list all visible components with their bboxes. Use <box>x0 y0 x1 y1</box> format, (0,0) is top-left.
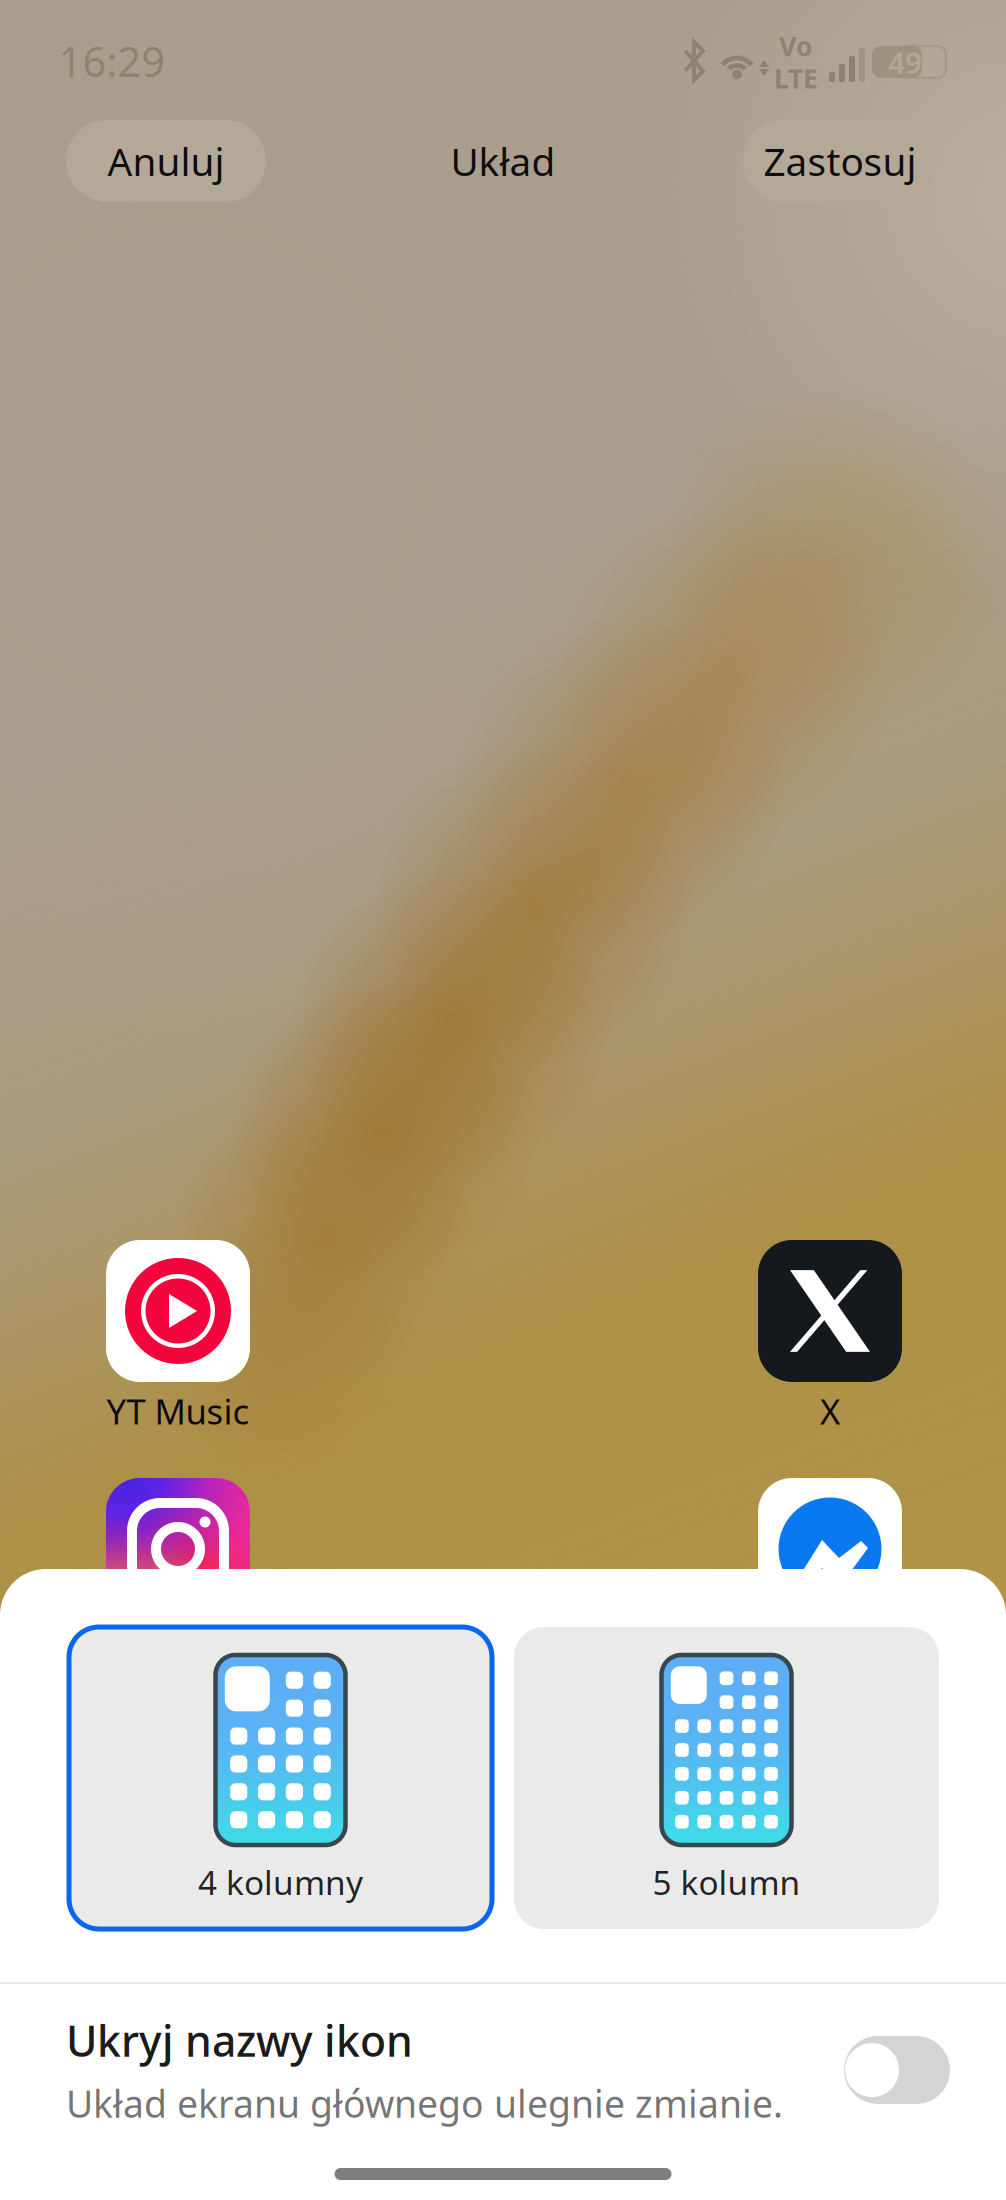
staticText: Układ ekranu głównego ulegnie zmianie. <box>66 2078 783 2128</box>
staticText: X <box>820 1388 840 1434</box>
button[interactable]: 5 kolumn <box>514 1627 939 1929</box>
button[interactable]: X <box>758 1240 902 1434</box>
staticText: Ukryj nazwy ikon <box>66 2012 413 2069</box>
staticText: 4 kolumny <box>198 1860 363 1904</box>
staticText: Układ <box>450 135 555 187</box>
staticText: Anuluj <box>107 135 224 187</box>
button[interactable]: Zastosuj <box>743 120 937 202</box>
button[interactable] <box>106 1478 250 1620</box>
button[interactable]: 4 kolumny <box>69 1627 492 1929</box>
button[interactable]: YT Music <box>106 1240 250 1434</box>
staticText: 49 <box>888 42 922 81</box>
staticText: Zastosuj <box>763 135 916 187</box>
button[interactable]: Ukryj nazwy ikon <box>66 2015 950 2125</box>
staticText: 16:29 <box>58 34 165 88</box>
staticText: LTE <box>774 60 818 96</box>
staticText: Vo <box>779 28 813 63</box>
staticText: 5 kolumn <box>652 1860 800 1904</box>
button[interactable]: Anuluj <box>66 120 266 202</box>
staticText: YT Music <box>106 1388 249 1434</box>
button[interactable] <box>758 1478 902 1620</box>
